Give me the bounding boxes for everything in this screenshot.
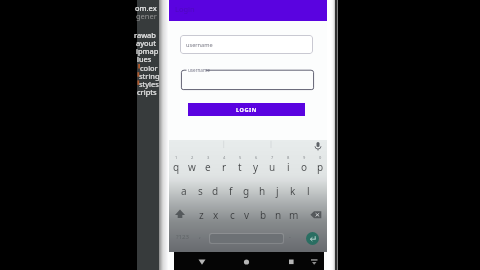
staticText: o	[301, 160, 308, 174]
staticText: rawable	[134, 30, 157, 40]
staticText: s	[198, 184, 203, 198]
button[interactable]: username	[180, 35, 313, 54]
button[interactable]: c	[224, 203, 240, 223]
staticText: j	[276, 184, 279, 198]
staticText: .	[289, 231, 291, 241]
staticText: v	[244, 208, 250, 222]
button[interactable]: 9	[296, 155, 312, 175]
button[interactable]: g	[238, 179, 254, 199]
staticText: 3	[207, 155, 210, 160]
staticText: 7	[271, 155, 274, 160]
staticText: Login	[175, 4, 195, 14]
button[interactable]: LOGIN	[188, 103, 305, 116]
staticText: r	[222, 160, 227, 174]
button[interactable]: 5	[232, 155, 248, 175]
button[interactable]: Back	[194, 253, 210, 269]
button[interactable]: ?123	[171, 230, 193, 244]
staticText: ?123	[176, 233, 189, 241]
staticText: 1	[175, 155, 178, 160]
staticText: LOGIN	[236, 106, 257, 114]
button[interactable]: 6	[248, 155, 264, 175]
staticText: om.exa	[135, 3, 158, 13]
staticText: y	[253, 160, 259, 174]
staticText: styles	[139, 79, 159, 89]
staticText: color	[140, 63, 158, 73]
staticText: l	[307, 184, 310, 198]
staticText: ayout	[136, 38, 156, 48]
staticText: f	[229, 184, 233, 198]
button[interactable]: j	[269, 179, 285, 199]
staticText: ,	[199, 231, 201, 241]
button[interactable]: b	[255, 203, 271, 223]
staticText: username	[186, 41, 213, 49]
staticText: 2	[191, 155, 194, 160]
button[interactable]: Shift	[172, 206, 188, 222]
staticText: lues	[137, 54, 152, 64]
button[interactable]: 4	[216, 155, 232, 175]
button[interactable]: m	[286, 203, 302, 223]
button[interactable]: 3	[200, 155, 216, 175]
staticText: k	[290, 184, 296, 198]
staticText: x	[213, 208, 219, 222]
button[interactable]: h	[254, 179, 270, 199]
button[interactable]: z	[193, 203, 209, 223]
staticText: a	[181, 184, 187, 198]
staticText: c	[230, 208, 235, 222]
staticText: e	[205, 160, 211, 174]
staticText: 5	[239, 155, 242, 160]
staticText: p	[317, 160, 324, 174]
staticText: i	[287, 160, 290, 174]
button[interactable]: k	[285, 179, 301, 199]
staticText: 9	[303, 155, 306, 160]
button[interactable]: Enter	[306, 232, 319, 245]
staticText: ipmap	[136, 46, 159, 56]
staticText: d	[212, 184, 219, 198]
staticText: z	[199, 208, 204, 222]
button[interactable]: Voice input	[312, 140, 324, 152]
staticText: 8	[287, 155, 290, 160]
staticText: g	[243, 184, 250, 198]
staticText: t	[238, 160, 242, 174]
button[interactable]: x	[208, 203, 224, 223]
button[interactable]: 8	[280, 155, 296, 175]
button[interactable]: d	[207, 179, 223, 199]
button[interactable]: v	[239, 203, 255, 223]
button[interactable]: Recent apps	[283, 253, 299, 269]
staticText: cripts	[137, 87, 157, 97]
staticText: 0	[319, 155, 322, 160]
button[interactable]: 0	[312, 155, 328, 175]
staticText: username	[188, 67, 210, 73]
staticText: h	[259, 184, 266, 198]
button[interactable]: 2	[184, 155, 200, 175]
button[interactable]: username	[181, 67, 314, 90]
button[interactable]: Home	[238, 253, 254, 269]
staticText: genera	[136, 11, 159, 21]
button[interactable]: 1	[168, 155, 184, 175]
staticText: u	[269, 160, 276, 174]
button[interactable]: Backspace	[308, 206, 324, 222]
staticText: q	[173, 160, 180, 174]
button[interactable]: n	[270, 203, 286, 223]
staticText: w	[188, 160, 196, 174]
button[interactable]: s	[192, 179, 208, 199]
staticText: m	[289, 208, 299, 222]
button[interactable]: 7	[264, 155, 280, 175]
button[interactable]: l	[300, 179, 316, 199]
button[interactable]: a	[176, 179, 192, 199]
staticText: n	[275, 208, 282, 222]
button[interactable]: f	[223, 179, 239, 199]
button[interactable]: Hide keyboard	[306, 253, 322, 269]
staticText: 4	[223, 155, 226, 160]
staticText: b	[260, 208, 267, 222]
staticText: string	[139, 71, 160, 81]
staticText: 6	[255, 155, 258, 160]
